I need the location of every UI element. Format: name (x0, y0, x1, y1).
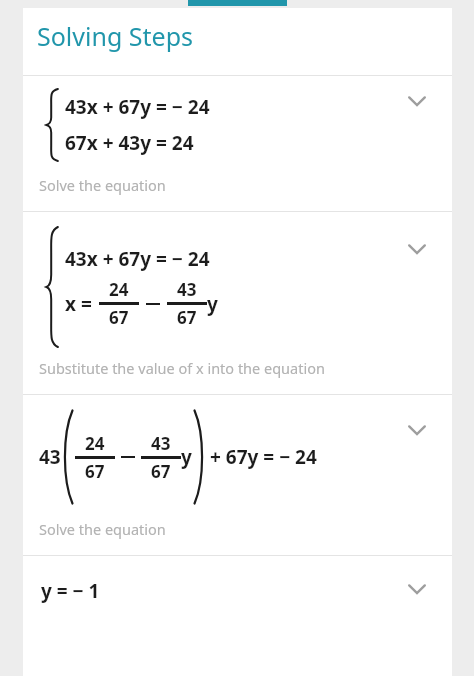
staticText: 67 (85, 460, 105, 483)
staticText: 67x + 43y = 24 (65, 130, 194, 156)
button[interactable]: y = − 1 (23, 556, 452, 622)
button[interactable]: Expand step (404, 236, 430, 262)
staticText: 43x + 67y = − 24 (65, 246, 210, 272)
staticText: 43 (151, 432, 171, 455)
staticText: 24 (109, 278, 129, 301)
staticText: Solving Steps (37, 19, 193, 53)
staticText: Solve the equation (39, 175, 166, 195)
staticText: y = − 1 (41, 578, 100, 604)
staticText: 67 (177, 306, 197, 329)
button[interactable]: 43x + 67y = − 24 (23, 212, 452, 394)
button[interactable]: Expand step (404, 88, 430, 114)
staticText: 67 (109, 306, 129, 329)
staticText: Solve the equation (39, 519, 166, 539)
button[interactable]: 43 (23, 395, 452, 555)
staticText: x = (65, 291, 92, 317)
staticText: 67 (151, 460, 171, 483)
staticText: Substitute the value of x into the equat… (39, 358, 325, 378)
staticText: + 67y = − 24 (210, 444, 317, 470)
staticText: y (207, 291, 218, 317)
button[interactable]: Expand step (404, 417, 430, 443)
staticText: 43x + 67y = − 24 (65, 94, 210, 120)
staticText: y (181, 444, 192, 470)
button[interactable]: Expand step (404, 576, 430, 602)
staticText: 43 (177, 278, 197, 301)
staticText: 24 (85, 432, 105, 455)
staticText: 43 (39, 444, 61, 470)
button[interactable]: 43x + 67y = − 24 (23, 76, 452, 211)
